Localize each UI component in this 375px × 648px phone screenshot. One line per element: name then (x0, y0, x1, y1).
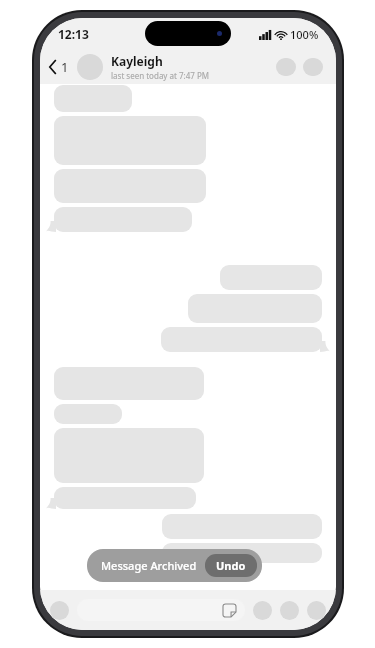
button[interactable] (77, 599, 245, 621)
button[interactable] (54, 367, 204, 400)
staticText: 100% (290, 27, 319, 42)
button[interactable]: Video call (276, 58, 296, 76)
button[interactable]: Voice call (303, 58, 323, 76)
button[interactable] (162, 514, 322, 539)
button[interactable] (54, 404, 122, 424)
button[interactable]: Microphone (280, 601, 299, 620)
button[interactable]: Camera (253, 601, 272, 620)
button[interactable] (220, 265, 322, 290)
staticText: 1 (61, 58, 69, 76)
button[interactable]: Send (307, 601, 326, 620)
button[interactable]: Attach (50, 601, 69, 620)
button[interactable] (54, 487, 196, 509)
staticText: last seen today at 7:47 PM (111, 70, 210, 81)
button[interactable]: Undo (205, 554, 257, 577)
button[interactable]: Kayleigh (77, 53, 210, 81)
staticText: Message Archived (101, 558, 197, 573)
button[interactable] (54, 85, 132, 112)
staticText: 12:13 (58, 26, 89, 42)
staticText: Undo (216, 558, 246, 573)
button[interactable] (162, 543, 322, 563)
button[interactable] (54, 207, 192, 232)
button[interactable]: Message Archived (87, 549, 262, 582)
button[interactable]: Back, 1 unread (46, 54, 72, 80)
button[interactable] (188, 294, 322, 323)
staticText: Kayleigh (111, 53, 163, 69)
